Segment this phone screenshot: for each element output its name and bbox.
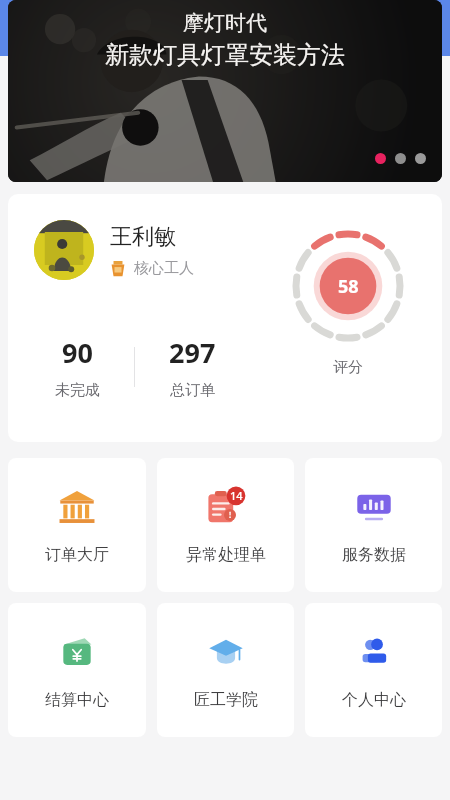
button[interactable]: 结算中心: [8, 603, 146, 737]
staticText: 未完成: [55, 381, 100, 400]
staticText: 总订单: [170, 381, 215, 400]
staticText: 王利敏: [110, 223, 176, 251]
button[interactable]: 服务数据: [305, 458, 442, 592]
staticText: 服务数据: [342, 545, 406, 565]
button[interactable]: 297: [135, 334, 250, 400]
staticText: 结算中心: [45, 690, 109, 710]
button[interactable]: 摩灯时代: [8, 0, 442, 182]
staticText: 14: [230, 488, 243, 503]
staticText: 异常处理单: [186, 545, 266, 565]
staticText: 匠工学院: [194, 690, 258, 710]
button[interactable]: 个人中心: [305, 603, 442, 737]
button[interactable]: 90: [20, 334, 134, 400]
staticText: 58: [338, 274, 359, 299]
staticText: 订单大厅: [45, 545, 109, 565]
staticText: 评分: [333, 358, 363, 377]
staticText: 297: [169, 334, 216, 371]
staticText: 摩灯时代: [183, 10, 267, 36]
button[interactable]: 订单大厅: [8, 458, 146, 592]
staticText: 个人中心: [342, 690, 406, 710]
staticText: 90: [62, 334, 93, 371]
button[interactable]: 14: [157, 458, 294, 592]
staticText: 核心工人: [134, 259, 194, 278]
button[interactable]: Profile photo: [34, 220, 94, 280]
button[interactable]: Profile photo: [8, 194, 442, 442]
staticText: 新款灯具灯罩安装方法: [105, 40, 345, 70]
button[interactable]: 匠工学院: [157, 603, 294, 737]
